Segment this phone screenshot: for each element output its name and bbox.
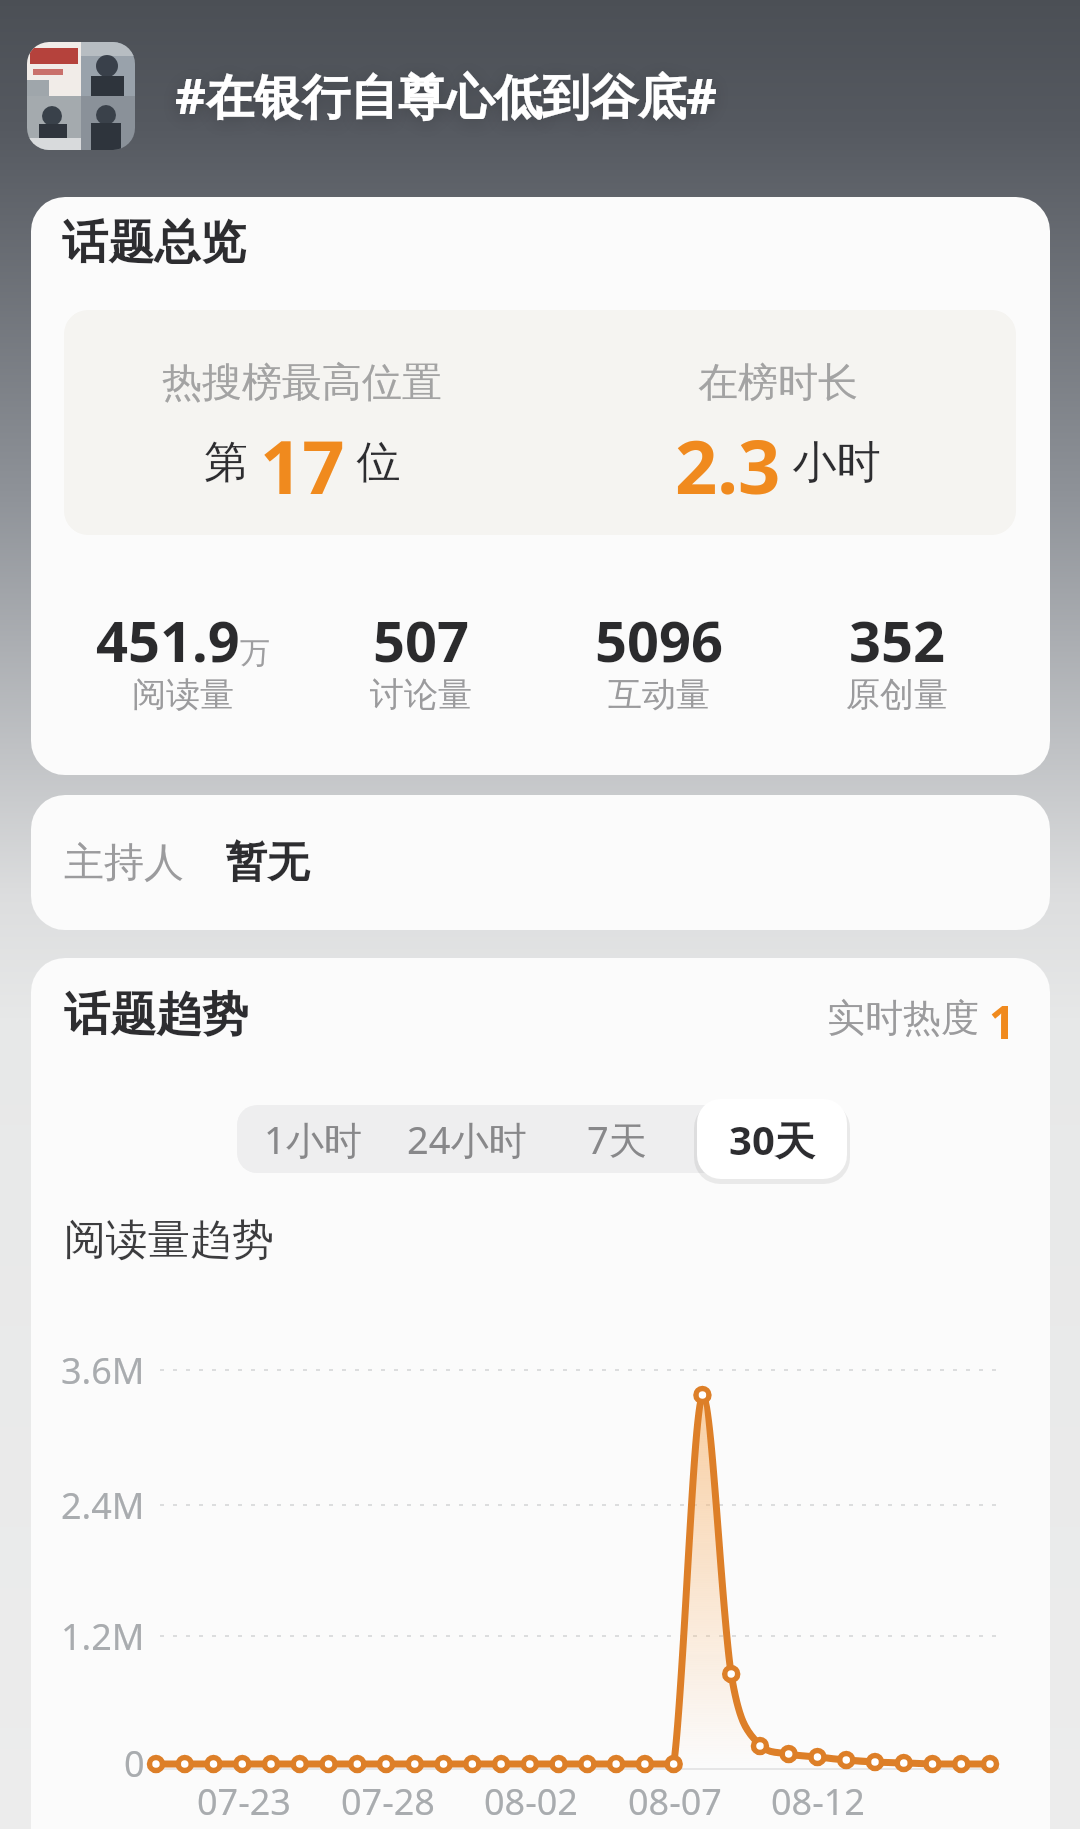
- staticText: 实时热度: [827, 990, 989, 1040]
- staticText: 小时: [781, 430, 881, 490]
- staticText: 热搜榜最高位置: [162, 357, 442, 407]
- staticText: 讨论量: [370, 673, 472, 716]
- button[interactable]: 24小时: [392, 1105, 542, 1173]
- staticText: 1小时: [264, 1113, 362, 1165]
- staticText: 5096: [595, 602, 724, 678]
- button[interactable]: #在银行自尊心低到谷底#: [175, 60, 718, 132]
- staticText: 万: [240, 634, 270, 672]
- button[interactable]: 主持人: [31, 795, 1050, 930]
- staticText: 30天: [729, 1112, 815, 1167]
- staticText: 话题趋势: [64, 986, 248, 1044]
- staticText: 原创量: [846, 673, 948, 716]
- staticText: #在银行自尊心低到谷底#: [175, 63, 718, 129]
- staticText: 阅读量: [132, 673, 234, 716]
- staticText: 2.3: [675, 415, 781, 505]
- staticText: 451.9: [96, 602, 240, 678]
- staticText: 08-07: [628, 1777, 722, 1826]
- staticText: 1.2M: [61, 1612, 145, 1661]
- button[interactable]: 7天: [542, 1105, 692, 1173]
- staticText: 08-12: [771, 1777, 865, 1826]
- staticText: 17: [260, 415, 345, 505]
- staticText: 3.6M: [61, 1346, 145, 1395]
- button[interactable]: 1小时: [238, 1105, 388, 1173]
- staticText: 7天: [587, 1113, 647, 1165]
- staticText: 07-28: [341, 1777, 435, 1826]
- staticText: 位: [345, 430, 401, 490]
- staticText: 08-02: [484, 1777, 578, 1826]
- button[interactable]: 30天: [697, 1099, 847, 1179]
- staticText: 阅读量趋势: [64, 1214, 274, 1267]
- staticText: 互动量: [608, 673, 710, 716]
- staticText: 07-23: [197, 1777, 291, 1826]
- staticText: 暂无: [225, 836, 309, 889]
- staticText: 1: [989, 990, 1016, 1040]
- staticText: 主持人: [64, 837, 184, 887]
- staticText: 在榜时长: [698, 357, 858, 407]
- staticText: 0: [124, 1739, 145, 1788]
- staticText: 24小时: [407, 1113, 527, 1165]
- staticText: 话题总览: [62, 214, 246, 272]
- staticText: 第: [204, 430, 260, 490]
- staticText: 507: [373, 602, 470, 678]
- staticText: 352: [849, 602, 946, 678]
- staticText: 2.4M: [61, 1481, 145, 1530]
